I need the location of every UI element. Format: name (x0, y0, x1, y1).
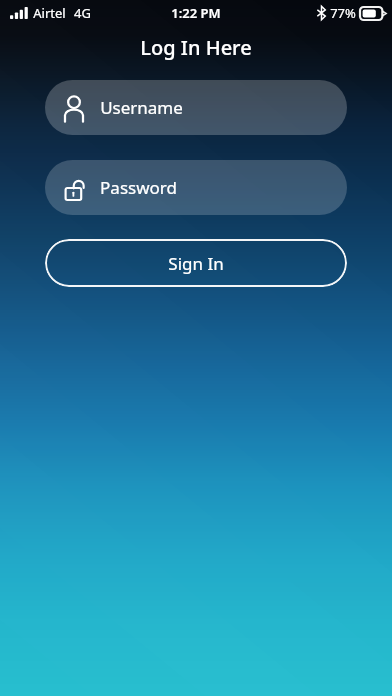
staticText: 77% (330, 4, 356, 22)
staticText: Username (100, 96, 183, 119)
button[interactable]: Username (45, 80, 347, 135)
other: Username (59, 93, 89, 123)
staticText: 4G (74, 4, 91, 22)
button[interactable]: Password (45, 160, 347, 215)
button[interactable]: Sign In (45, 239, 347, 287)
other: Password (59, 173, 89, 203)
staticText: Password (100, 176, 177, 199)
staticText: Sign In (168, 252, 224, 275)
staticText: Airtel (33, 4, 66, 22)
staticText: Log In Here (140, 34, 252, 61)
staticText: 1:22 PM (171, 4, 221, 22)
